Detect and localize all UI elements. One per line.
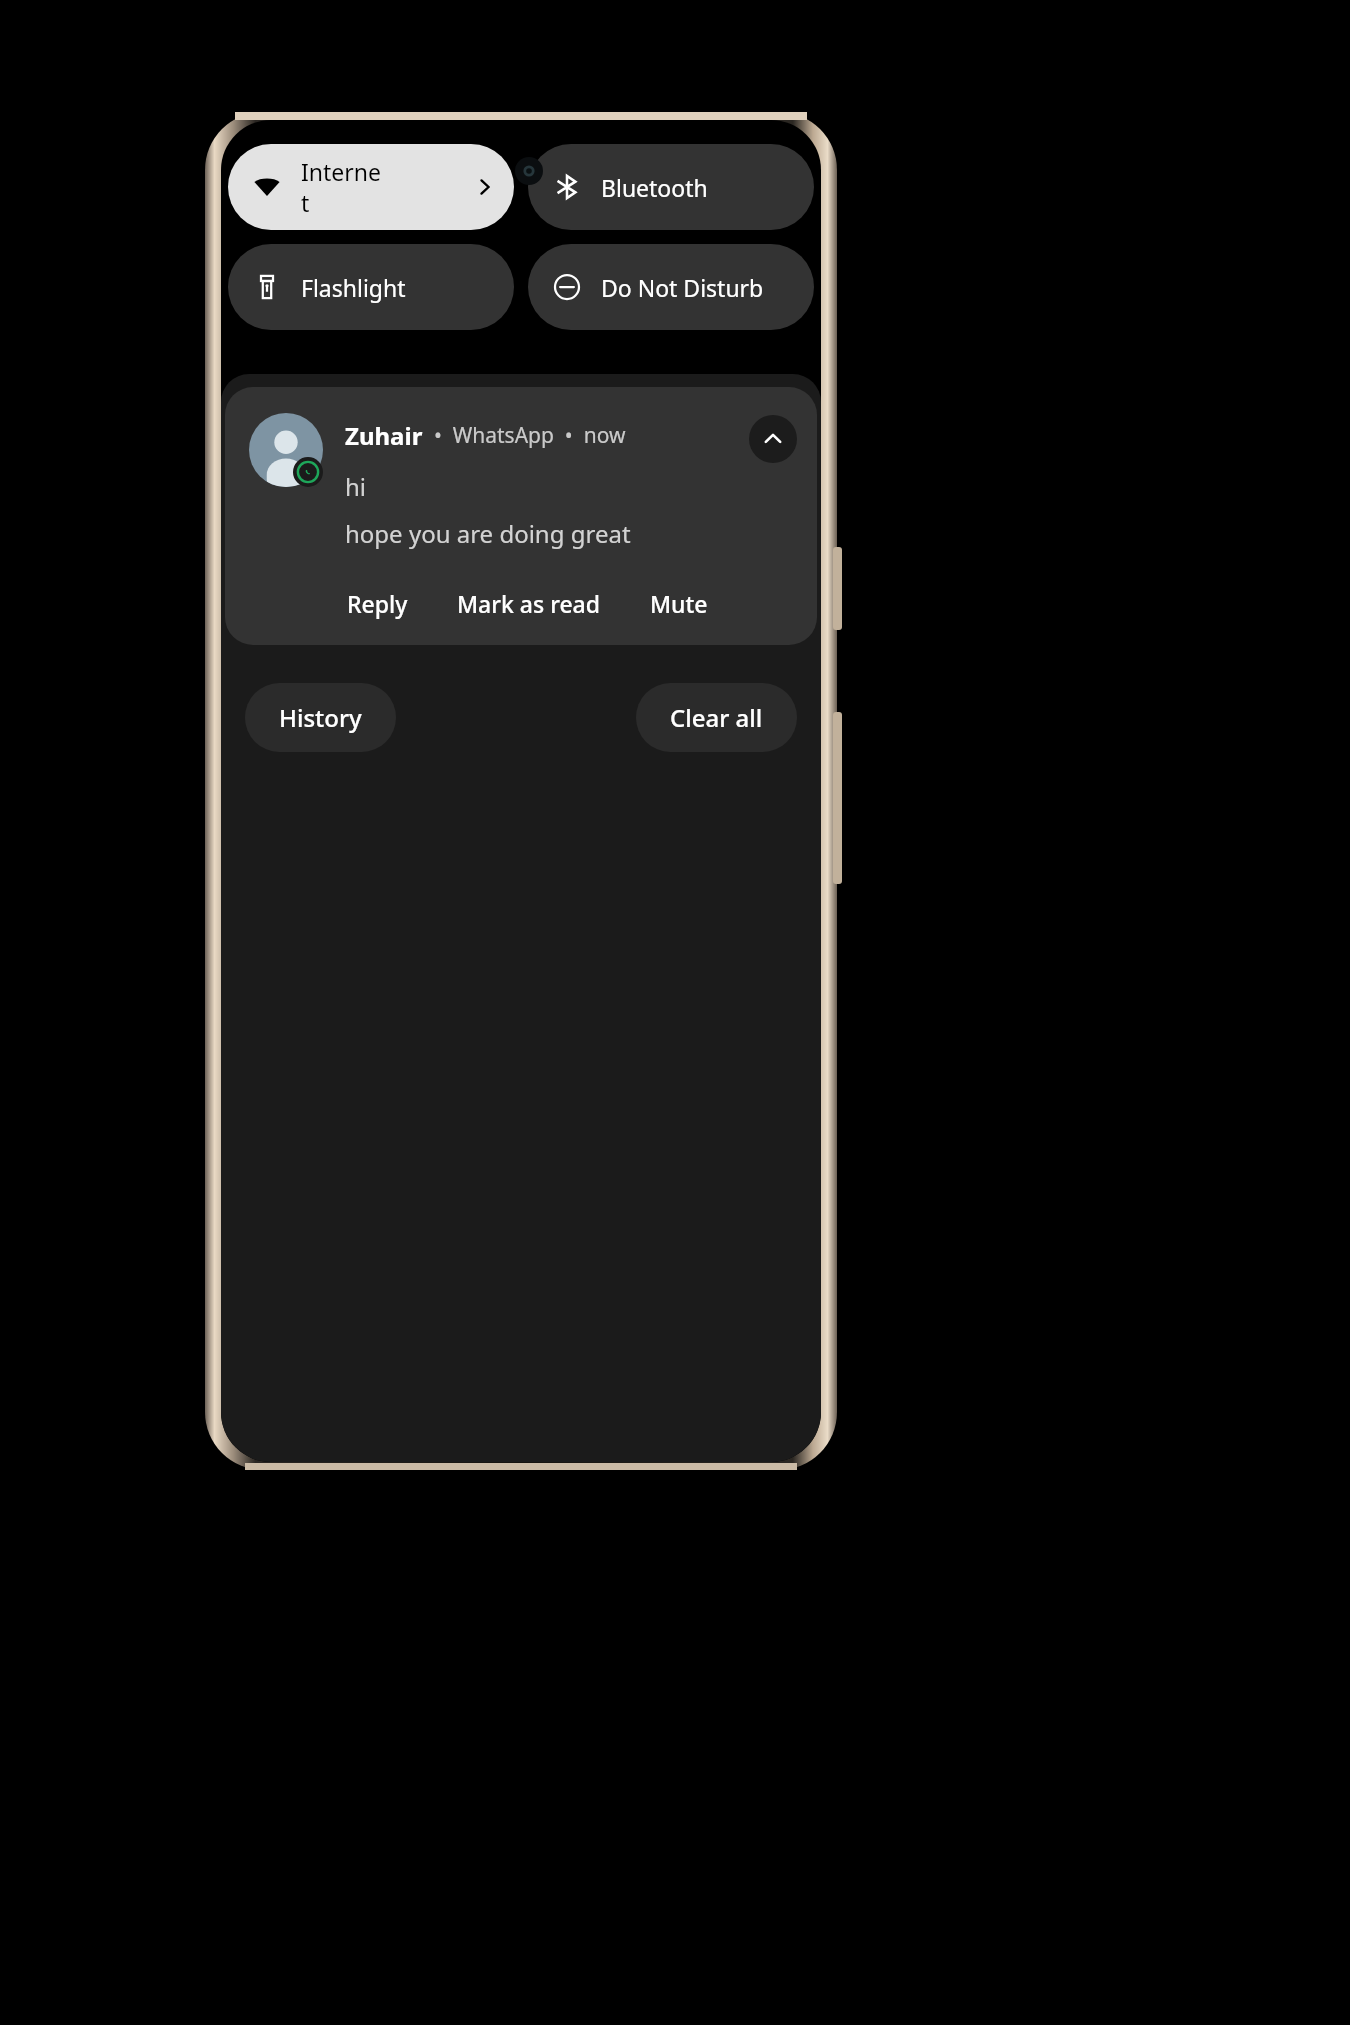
button[interactable]: Zuhair <box>225 387 817 645</box>
button[interactable]: Bluetooth <box>528 144 814 230</box>
button[interactable]: Internet <box>228 144 514 230</box>
staticText: Mark as read <box>457 588 601 619</box>
staticText: Flashlight <box>301 272 406 303</box>
staticText: Zuhair <box>345 419 423 452</box>
staticText: hope you are doing great <box>345 517 631 550</box>
staticText: Do Not Disturb <box>601 272 764 303</box>
button[interactable]: Reply <box>345 584 410 623</box>
staticText: • WhatsApp • now <box>423 421 626 450</box>
staticText: Bluetooth <box>601 172 708 203</box>
button[interactable]: Clear all <box>636 683 797 752</box>
button[interactable]: Mark as read <box>455 584 603 623</box>
staticText: hi <box>345 470 367 503</box>
button[interactable]: Do Not Disturb <box>528 244 814 330</box>
staticText: Clear all <box>670 701 763 734</box>
button[interactable]: Mute <box>648 584 710 623</box>
button[interactable]: Flashlight <box>228 244 514 330</box>
staticText: Reply <box>347 588 408 619</box>
button[interactable]: History <box>245 683 396 752</box>
button[interactable]: Collapse notification <box>749 415 797 463</box>
staticText: History <box>279 701 362 734</box>
staticText: Internet <box>301 156 387 218</box>
staticText: Mute <box>650 588 708 619</box>
